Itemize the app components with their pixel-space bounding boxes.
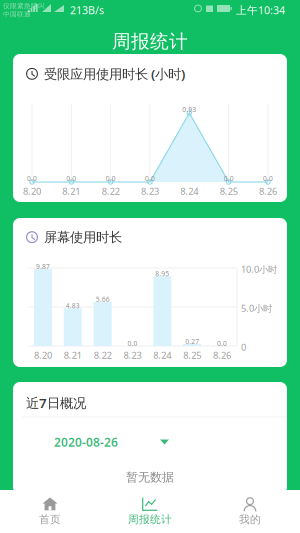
staticText: 我的 <box>239 513 261 526</box>
staticText: 8.95 <box>155 269 169 278</box>
staticText: 8.21 <box>62 185 80 197</box>
staticText: 8.24 <box>153 349 171 361</box>
staticText: 0 <box>241 341 246 353</box>
staticText: 上午10:34 <box>236 3 285 17</box>
staticText: 8.22 <box>94 349 112 361</box>
staticText: 屏幕使用时长 <box>44 229 122 245</box>
staticText: 8.25 <box>220 185 238 197</box>
staticText: 213B/s <box>70 3 104 17</box>
staticText: 受限应用使用时长 (小时) <box>44 65 185 83</box>
staticText: 0.0 <box>27 174 37 183</box>
staticText: 0.0 <box>217 339 227 348</box>
staticText: 10.0小时 <box>241 263 277 275</box>
staticText: 8.20 <box>23 185 41 197</box>
staticText: 8.26 <box>213 349 231 361</box>
staticText: 0.0 <box>224 174 234 183</box>
staticText: 9.87 <box>36 262 50 271</box>
staticText: 0.0 <box>263 174 273 183</box>
button[interactable]: 我的 <box>200 490 300 533</box>
staticText: 8.21 <box>64 349 82 361</box>
staticText: 5.66 <box>96 295 110 304</box>
staticText: 5.0小时 <box>241 302 272 314</box>
staticText: 中国联通 <box>3 10 31 18</box>
staticText: 0.0 <box>127 339 137 348</box>
staticText: 近7日概况 <box>26 394 86 412</box>
staticText: 2020-08-26 <box>54 434 118 450</box>
staticText: 周报统计 <box>128 513 172 526</box>
button[interactable]: 首页 <box>0 490 100 533</box>
staticText: 暂无数据 <box>126 470 174 485</box>
staticText: 8.23 <box>141 185 159 197</box>
staticText: 8.22 <box>102 185 120 197</box>
staticText: 0.0 <box>66 174 76 183</box>
staticText: 周报统计 <box>112 30 188 53</box>
staticText: 首页 <box>39 513 61 526</box>
staticText: 0.93 <box>182 105 196 114</box>
staticText: 8.20 <box>34 349 52 361</box>
staticText: 8.23 <box>123 349 141 361</box>
button[interactable]: 2020-08-26 <box>54 431 169 453</box>
staticText: 8.25 <box>183 349 201 361</box>
staticText: 0.0 <box>145 174 155 183</box>
staticText: 8.26 <box>259 185 277 197</box>
staticText: 0.27 <box>185 337 199 346</box>
button[interactable]: 周报统计 <box>100 490 200 533</box>
staticText: 仅限紧急呼叫 <box>3 2 45 10</box>
staticText: 0.0 <box>106 174 116 183</box>
staticText: 4.83 <box>66 301 80 310</box>
staticText: 8.24 <box>180 185 198 197</box>
